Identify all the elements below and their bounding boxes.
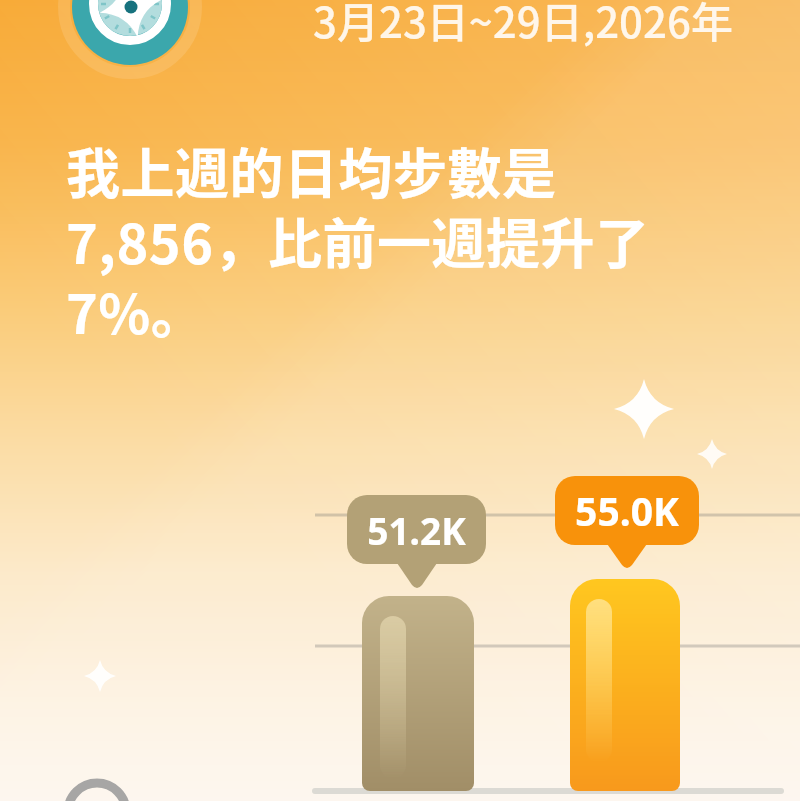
staticText: 51.2K — [367, 505, 466, 555]
staticText: 3月23日~29日,2026年 — [313, 0, 733, 50]
staticText: 我上週的日均步數是 7,856，比前一週提升了 7%。 — [66, 131, 650, 350]
staticText: 55.0K — [575, 484, 679, 537]
